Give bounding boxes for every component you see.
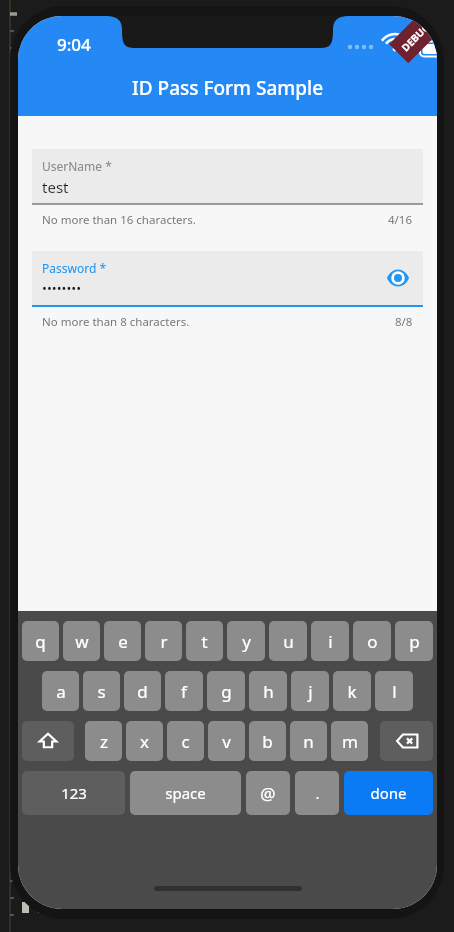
staticText: space <box>165 783 206 803</box>
staticText: d <box>137 680 148 703</box>
staticText: w <box>75 630 89 653</box>
staticText: y <box>242 630 251 653</box>
button[interactable]: @ <box>246 771 290 815</box>
button[interactable]: done <box>344 771 433 815</box>
staticText: l <box>392 680 397 703</box>
button[interactable]: b <box>249 721 286 761</box>
button[interactable]: Shift <box>22 721 74 761</box>
button[interactable]: p <box>395 621 433 661</box>
button[interactable]: . <box>295 771 339 815</box>
staticText: c <box>181 730 190 753</box>
button[interactable]: d <box>124 671 161 711</box>
staticText: b <box>262 730 273 753</box>
button[interactable]: w <box>63 621 100 661</box>
button[interactable]: x <box>126 721 163 761</box>
button[interactable]: l <box>375 671 413 711</box>
staticText: x <box>140 730 149 753</box>
staticText: z <box>100 730 108 753</box>
button[interactable]: r <box>145 621 182 661</box>
staticText: r <box>160 630 168 653</box>
button[interactable]: e <box>104 621 141 661</box>
staticText: 4/16 <box>388 212 413 228</box>
staticText: j <box>308 680 313 703</box>
button[interactable]: o <box>353 621 391 661</box>
staticText: 9:04 <box>57 33 91 56</box>
button[interactable]: Toggle password visibility <box>383 263 413 293</box>
staticText: n <box>303 730 314 753</box>
button[interactable]: y <box>227 621 265 661</box>
button[interactable]: u <box>269 621 307 661</box>
staticText: g <box>221 680 232 703</box>
staticText: i <box>328 630 333 653</box>
staticText: . <box>315 783 320 803</box>
staticText: No more than 8 characters. <box>42 314 190 330</box>
button[interactable]: q <box>22 621 59 661</box>
staticText: DEBUG <box>398 20 433 54</box>
staticText: f <box>181 680 187 703</box>
button[interactable]: m <box>331 721 368 761</box>
staticText: k <box>347 680 357 703</box>
staticText: u <box>283 630 294 653</box>
staticText: UserName * <box>42 158 112 174</box>
staticText: e <box>118 630 128 653</box>
staticText: q <box>35 630 46 653</box>
staticText: o <box>367 630 378 653</box>
staticText: p <box>409 630 420 653</box>
button[interactable]: n <box>290 721 327 761</box>
button[interactable]: space <box>130 771 241 815</box>
staticText: h <box>263 680 274 703</box>
button[interactable]: s <box>83 671 120 711</box>
button[interactable]: h <box>249 671 287 711</box>
button[interactable]: a <box>42 671 79 711</box>
button[interactable]: j <box>291 671 329 711</box>
staticText: s <box>97 680 106 703</box>
button[interactable]: k <box>333 671 371 711</box>
staticText: No more than 16 characters. <box>42 212 196 228</box>
staticText: ID Pass Form Sample <box>132 75 324 101</box>
button[interactable]: 123 <box>22 771 125 815</box>
staticText: done <box>370 783 407 803</box>
staticText: test <box>42 177 69 197</box>
button[interactable]: Backspace <box>380 721 433 761</box>
staticText: Password * <box>42 260 107 276</box>
button[interactable]: v <box>208 721 245 761</box>
staticText: t <box>201 630 208 653</box>
button[interactable]: f <box>165 671 203 711</box>
button[interactable]: c <box>167 721 204 761</box>
button[interactable]: z <box>85 721 122 761</box>
staticText: 123 <box>61 783 87 803</box>
button[interactable]: Password * <box>32 251 423 330</box>
button[interactable]: i <box>311 621 349 661</box>
staticText: 8/8 <box>395 314 413 330</box>
staticText: @ <box>260 782 276 805</box>
button[interactable]: UserName * <box>32 149 423 228</box>
button[interactable]: g <box>207 671 245 711</box>
staticText: a <box>56 680 66 703</box>
staticText: •••••••• <box>42 279 82 297</box>
staticText: m <box>342 730 358 753</box>
staticText: v <box>222 730 231 753</box>
button[interactable]: t <box>186 621 223 661</box>
